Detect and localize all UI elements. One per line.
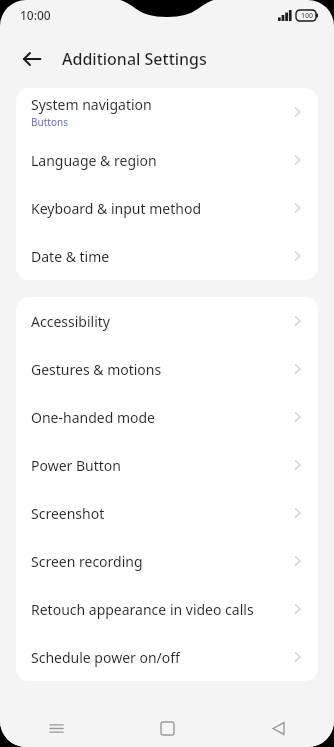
staticText: 100 [301, 11, 314, 21]
staticText: 10:00 [20, 7, 51, 23]
button[interactable]: Gestures & motions [16, 345, 318, 393]
button[interactable]: Home [112, 710, 223, 747]
staticText: Additional Settings [62, 48, 207, 70]
button[interactable]: Schedule power on/off [16, 633, 318, 681]
staticText: Gestures & motions [31, 360, 162, 379]
button[interactable]: Recent apps [0, 710, 112, 747]
staticText: Screenshot [31, 504, 105, 523]
staticText: Buttons [31, 115, 68, 129]
staticText: Screen recording [31, 552, 143, 571]
button[interactable]: Back [10, 37, 54, 81]
staticText: Schedule power on/off [31, 648, 180, 667]
staticText: Accessibility [31, 312, 110, 331]
staticText: Power Button [31, 456, 121, 475]
button[interactable]: System navigation [16, 88, 318, 136]
button[interactable]: Keyboard & input method [16, 184, 318, 232]
button[interactable]: Screen recording [16, 537, 318, 585]
staticText: Date & time [31, 247, 110, 266]
staticText: One-handed mode [31, 408, 155, 427]
button[interactable]: Date & time [16, 232, 318, 280]
button[interactable]: Language & region [16, 136, 318, 184]
button[interactable]: Screenshot [16, 489, 318, 537]
staticText: System navigation [31, 95, 152, 114]
staticText: Keyboard & input method [31, 199, 201, 218]
button[interactable]: Back [223, 710, 334, 747]
staticText: Language & region [31, 151, 157, 170]
staticText: Retouch appearance in video calls [31, 600, 254, 619]
button[interactable]: Power Button [16, 441, 318, 489]
button[interactable]: Retouch appearance in video calls [16, 585, 318, 633]
button[interactable]: One-handed mode [16, 393, 318, 441]
button[interactable]: Accessibility [16, 297, 318, 345]
